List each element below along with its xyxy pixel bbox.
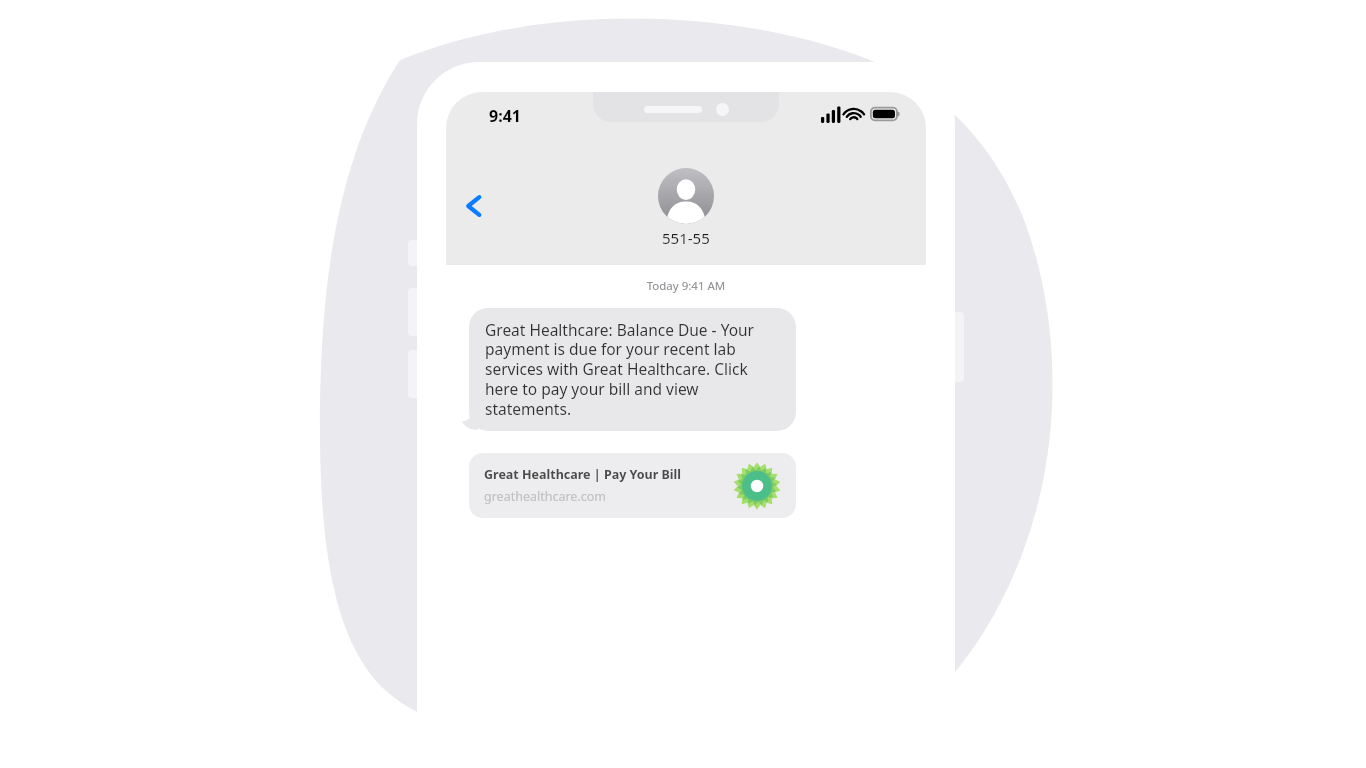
button[interactable]: Great Healthcare | Pay Your Bill <box>469 453 796 518</box>
staticText: Today 9:41 AM <box>446 278 926 294</box>
staticText: 551-55 <box>662 228 710 248</box>
staticText: Great Healthcare: Balance Due - Your pay… <box>485 319 780 420</box>
staticText: 9:41 <box>489 105 521 127</box>
staticText: Great Healthcare | Pay Your Bill <box>484 466 682 483</box>
staticText: greathealthcare.com <box>484 488 607 505</box>
button[interactable]: Back <box>452 184 496 228</box>
button[interactable]: Great Healthcare: Balance Due - Your pay… <box>469 308 796 431</box>
button[interactable]: Contact avatar <box>658 168 714 224</box>
